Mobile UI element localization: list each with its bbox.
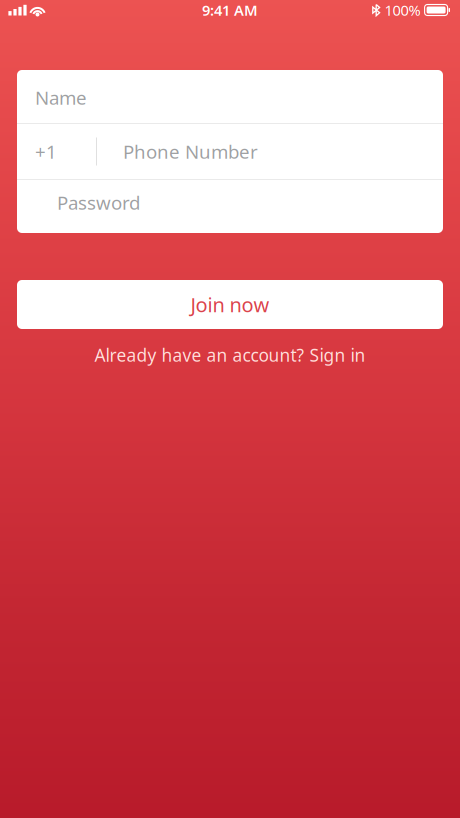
staticText: Password <box>57 190 140 215</box>
staticText: 100% <box>385 0 421 20</box>
staticText: Phone Number <box>123 139 258 164</box>
staticText: Join now <box>190 291 269 318</box>
staticText: +1 <box>35 139 57 164</box>
button[interactable]: Name <box>17 70 443 123</box>
button[interactable]: Password <box>17 180 443 233</box>
staticText: Already have an account? Sign in <box>94 343 365 366</box>
button[interactable]: Join now <box>17 280 443 329</box>
button[interactable]: +1 <box>17 124 443 179</box>
button[interactable]: Already have an account? Sign in <box>17 343 443 367</box>
staticText: 9:41 AM <box>202 0 258 20</box>
staticText: Name <box>35 85 87 110</box>
